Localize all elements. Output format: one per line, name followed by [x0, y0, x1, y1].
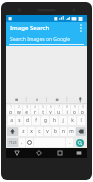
button[interactable]: v: [44, 127, 51, 136]
button[interactable]: k: [68, 116, 76, 125]
staticText: t: [42, 109, 44, 114]
button[interactable]: Recent apps: [49, 148, 70, 158]
button[interactable]: 0: [79, 105, 86, 114]
staticText: 9: [74, 105, 76, 109]
button[interactable]: 3: [23, 105, 30, 114]
staticText: h: [53, 117, 56, 124]
staticText: 2: [18, 105, 20, 109]
staticText: r: [34, 109, 36, 114]
staticText: y: [49, 109, 52, 114]
staticText: o: [73, 109, 76, 114]
staticText: d: [26, 117, 29, 124]
staticText: x: [30, 128, 33, 135]
button[interactable]: g: [41, 116, 49, 125]
staticText: k: [71, 117, 74, 124]
button[interactable]: x: [28, 127, 35, 136]
button[interactable]: ?123: [7, 138, 18, 147]
button[interactable]: 6: [47, 105, 54, 114]
button[interactable]: m: [68, 127, 75, 136]
staticText: n: [62, 128, 65, 135]
staticText: p: [81, 109, 84, 114]
button[interactable]: Back: [6, 148, 28, 158]
staticText: 0: [82, 105, 84, 109]
staticText: b: [54, 128, 57, 135]
staticText: ,: [21, 139, 23, 146]
staticText: c: [38, 128, 41, 135]
staticText: a: [10, 117, 13, 124]
staticText: 7: [58, 105, 60, 109]
button[interactable]: 2: [15, 105, 22, 114]
button[interactable]: Search: [74, 138, 86, 147]
button[interactable]: Emoji: [26, 138, 33, 147]
button[interactable]: n: [60, 127, 67, 136]
staticText: i: [66, 109, 68, 114]
staticText: 4: [34, 105, 36, 109]
button[interactable]: d: [24, 116, 31, 125]
button[interactable]: More options: [75, 22, 87, 34]
button[interactable]: Home: [28, 148, 49, 158]
staticText: 5: [42, 105, 44, 109]
button[interactable]: .: [66, 138, 73, 147]
button[interactable]: b: [52, 127, 59, 136]
staticText: j: [62, 117, 64, 124]
staticText: s: [18, 117, 21, 124]
button[interactable]: f: [32, 116, 40, 125]
button[interactable]: s: [16, 116, 23, 125]
staticText: l: [80, 117, 82, 124]
button[interactable]: c: [36, 127, 43, 136]
staticText: Search Images on Google: [10, 36, 71, 43]
staticText: .: [69, 139, 71, 146]
staticText: m: [69, 128, 74, 135]
staticText: u: [57, 109, 60, 114]
button[interactable]: 1: [7, 105, 14, 114]
staticText: 1: [10, 105, 12, 109]
button[interactable]: Backspace: [76, 127, 86, 136]
button[interactable]: a: [8, 116, 15, 125]
staticText: Image Search: [10, 24, 50, 32]
button[interactable]: ,: [19, 138, 25, 147]
button[interactable]: h: [50, 116, 58, 125]
staticText: v: [46, 128, 49, 135]
button[interactable]: Search Images on Google: [6, 34, 87, 46]
button[interactable]: 4: [31, 105, 38, 114]
staticText: w: [17, 109, 21, 114]
staticText: 6: [50, 105, 52, 109]
button[interactable]: z: [19, 127, 27, 136]
staticText: g: [44, 117, 47, 124]
staticText: ?123: [9, 140, 17, 145]
staticText: 8: [66, 105, 68, 109]
button[interactable]: 5: [39, 105, 46, 114]
button[interactable]: Shift: [7, 127, 18, 136]
staticText: e: [25, 109, 28, 114]
button[interactable]: j: [59, 116, 67, 125]
button[interactable]: 9: [71, 105, 78, 114]
staticText: z: [22, 128, 25, 135]
staticText: f: [35, 117, 37, 124]
button[interactable]: Switch keyboard: [70, 148, 87, 158]
button[interactable]: 7: [55, 105, 62, 114]
button[interactable]: l: [77, 116, 85, 125]
staticText: 3: [26, 105, 28, 109]
staticText: q: [9, 109, 12, 114]
button[interactable]: 8: [63, 105, 70, 114]
